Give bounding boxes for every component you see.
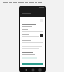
button[interactable]: Home (31, 68, 34, 71)
button[interactable] (22, 29, 43, 32)
button[interactable]: Scan code (22, 34, 43, 37)
button[interactable]: Back (24, 68, 27, 71)
button[interactable]: Recent apps (38, 68, 41, 71)
button[interactable] (20, 9, 45, 17)
